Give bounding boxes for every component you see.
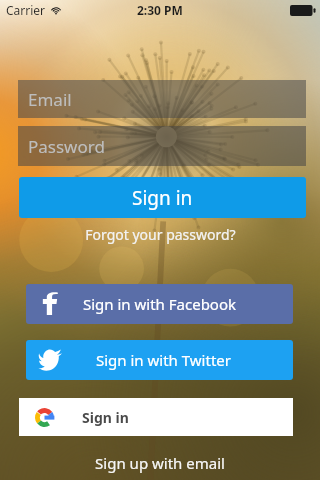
- staticText: 2:30 PM: [137, 2, 183, 18]
- button[interactable]: Sign in with Twitter: [26, 340, 293, 380]
- button[interactable]: Sign in with Facebook: [26, 284, 293, 324]
- staticText: Forgot your password?: [85, 225, 236, 244]
- staticText: Carrier: [6, 2, 46, 18]
- staticText: Sign in: [132, 185, 193, 211]
- button[interactable]: Sign in: [19, 398, 293, 436]
- button[interactable]: Forgot your password?: [0, 225, 320, 244]
- staticText: Email: [28, 88, 72, 111]
- staticText: Sign in with Facebook: [83, 294, 237, 314]
- staticText: Sign in with Twitter: [96, 350, 231, 370]
- button[interactable]: Sign up with email: [0, 453, 320, 473]
- button[interactable]: Email: [18, 80, 306, 118]
- staticText: Sign in: [82, 408, 129, 427]
- staticText: Password: [28, 135, 105, 158]
- button[interactable]: Password: [18, 126, 306, 166]
- button[interactable]: Sign in: [19, 177, 306, 218]
- staticText: Sign up with email: [95, 453, 225, 473]
